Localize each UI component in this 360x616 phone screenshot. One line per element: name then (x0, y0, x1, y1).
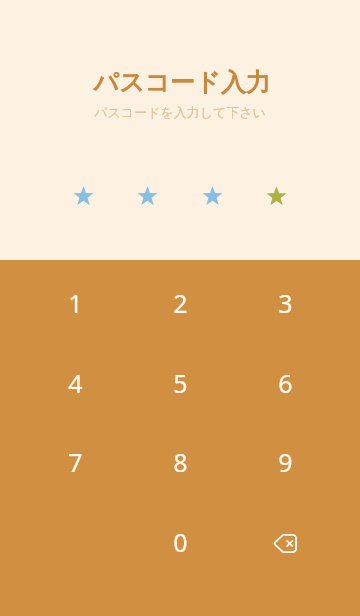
button[interactable]: 8 (128, 423, 232, 501)
button[interactable]: 5 (128, 344, 232, 422)
other: Delete (273, 534, 297, 553)
staticText: 2 (173, 286, 188, 320)
staticText: パスコード入力 (93, 67, 271, 98)
button[interactable]: 4 (23, 344, 127, 422)
button[interactable]: 1 (23, 264, 127, 342)
button[interactable]: 3 (233, 264, 337, 342)
button[interactable]: Delete (233, 503, 337, 581)
button[interactable]: 2 (128, 264, 232, 342)
other: Passcode digit empty (137, 185, 158, 206)
staticText: 8 (173, 445, 188, 479)
staticText: 4 (68, 366, 83, 400)
other: Passcode digit empty (73, 185, 94, 206)
button[interactable]: 9 (233, 423, 337, 501)
staticText: 1 (68, 286, 83, 320)
button[interactable]: 6 (233, 344, 337, 422)
other: Passcode digit entered (266, 185, 287, 206)
staticText: 0 (173, 525, 188, 559)
staticText: 7 (68, 445, 83, 479)
button[interactable]: 0 (128, 503, 232, 581)
staticText: 5 (173, 366, 188, 400)
staticText: 3 (278, 286, 293, 320)
staticText: 9 (278, 445, 293, 479)
other: Passcode digit empty (202, 185, 223, 206)
staticText: パスコードを入力して下さい (94, 104, 266, 120)
button[interactable]: 7 (23, 423, 127, 501)
staticText: 6 (278, 366, 293, 400)
